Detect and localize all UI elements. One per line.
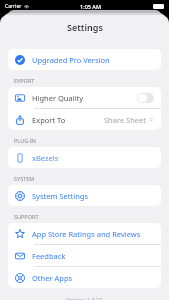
staticText: PLUG-IN xyxy=(14,137,36,144)
button[interactable]: Other Apps xyxy=(8,267,161,288)
staticText: Higher Quality xyxy=(32,93,84,103)
staticText: System Settings xyxy=(32,191,88,201)
staticText: Settings xyxy=(67,21,103,33)
button[interactable]: Export To xyxy=(8,109,161,130)
button[interactable]: Higher Quality xyxy=(8,87,161,108)
staticText: 1:05 AM xyxy=(80,3,102,10)
button[interactable]: Upgraded Pro Version xyxy=(8,49,161,70)
staticText: Upgraded Pro Version xyxy=(32,55,110,65)
staticText: SYSTEM xyxy=(14,175,35,182)
button[interactable]: System Settings xyxy=(8,185,161,206)
button[interactable]: Higher Quality toggle xyxy=(137,93,154,103)
staticText: Carrier xyxy=(5,3,22,10)
button[interactable]: xBezels xyxy=(8,147,161,168)
staticText: xBezels xyxy=(32,153,59,163)
staticText: Other Apps xyxy=(32,273,73,283)
staticText: Feedback xyxy=(32,251,66,261)
staticText: Share Sheet xyxy=(104,115,147,125)
staticText: App Store Ratings and Reviews xyxy=(32,229,141,239)
staticText: Version 1.8.10 xyxy=(66,296,103,300)
staticText: Export To xyxy=(32,115,66,125)
button[interactable]: App Store Ratings and Reviews xyxy=(8,223,161,244)
staticText: SUPPORT xyxy=(14,213,39,220)
staticText: EXPORT xyxy=(14,77,35,84)
button[interactable]: Feedback xyxy=(8,245,161,266)
